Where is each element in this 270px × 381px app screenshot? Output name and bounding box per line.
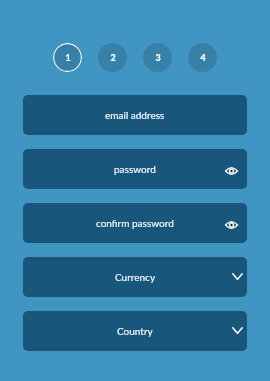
button[interactable]: Expand (232, 327, 243, 335)
other: Show password (225, 220, 238, 230)
button[interactable]: Show password (225, 163, 238, 176)
staticText: Currency (115, 271, 156, 283)
button[interactable]: email address (23, 95, 247, 135)
button[interactable]: Expand (232, 273, 243, 281)
button[interactable]: Currency (23, 257, 247, 297)
button[interactable]: Country (23, 311, 247, 351)
button[interactable]: Show password (225, 217, 238, 230)
button[interactable]: Step 2 (98, 43, 127, 72)
staticText: email address (105, 109, 165, 121)
staticText: password (114, 163, 156, 175)
other: Expand (232, 273, 243, 280)
staticText: confirm password (96, 217, 174, 229)
staticText: 4 (200, 52, 206, 63)
staticText: 3 (155, 52, 161, 63)
other: Show password (225, 166, 238, 176)
staticText: 1 (65, 52, 71, 63)
staticText: 2 (110, 52, 116, 63)
button[interactable]: Step 1 (53, 43, 82, 72)
staticText: Country (117, 325, 153, 337)
button[interactable]: Step 4 (188, 43, 217, 72)
button[interactable]: confirm password (23, 203, 247, 243)
button[interactable]: Step 3 (143, 43, 172, 72)
button[interactable]: password (23, 149, 247, 189)
other: Expand (232, 327, 243, 334)
